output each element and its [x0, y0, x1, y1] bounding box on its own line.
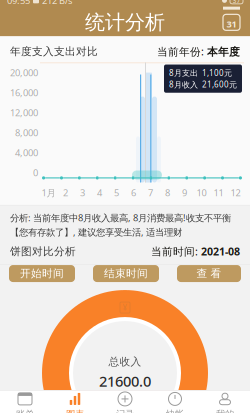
staticText: 6: [131, 186, 136, 199]
staticText: 查 看: [196, 267, 221, 280]
staticText: 1月: [41, 186, 55, 199]
staticText: 212 B/s: [42, 0, 72, 6]
staticText: 3: [80, 186, 85, 199]
staticText: 【您有存款了】, 建议您享受生活, 适当理财: [10, 226, 182, 238]
staticText: 当前年份: 本年度: [157, 44, 240, 58]
staticText: 11: [213, 186, 223, 199]
staticText: 31: [226, 18, 236, 30]
staticText: ¥: [122, 302, 127, 313]
staticText: 结束时间: [104, 267, 148, 280]
staticText: 年度支入支出对比: [10, 45, 98, 58]
staticText: 总收入: [108, 355, 141, 368]
staticText: 5: [114, 186, 119, 199]
staticText: 0: [33, 166, 38, 179]
button[interactable]: 结束时间: [93, 265, 159, 282]
staticText: 16,000: [10, 86, 38, 99]
staticText: 8: [165, 186, 170, 199]
staticText: 7: [148, 186, 153, 199]
staticText: 8月收入 21,600元: [169, 79, 237, 90]
button[interactable]: 查 看: [177, 265, 241, 282]
button[interactable]: 图表: [50, 387, 100, 413]
staticText: 9: [182, 186, 187, 199]
staticText: 2: [63, 186, 68, 199]
staticText: 4,000: [15, 146, 38, 159]
staticText: 21600.0: [99, 371, 151, 391]
staticText: 8,000: [15, 126, 38, 139]
staticText: 09:55: [7, 0, 30, 6]
staticText: 快帐: [166, 408, 184, 413]
button[interactable]: 开始时间: [9, 265, 75, 282]
staticText: 统计分析: [85, 10, 165, 35]
staticText: 10: [196, 186, 206, 199]
button[interactable]: 账单: [0, 387, 50, 413]
staticText: 记录: [116, 408, 134, 413]
staticText: 账单: [16, 408, 34, 413]
staticText: 4: [97, 186, 102, 199]
staticText: 12,000: [10, 106, 38, 119]
staticText: 12: [230, 186, 240, 199]
button[interactable]: 记录: [100, 387, 150, 413]
staticText: 20,000: [10, 66, 38, 79]
staticText: 图表: [66, 408, 84, 413]
staticText: 37: [232, 0, 240, 5]
staticText: 分析: 当前年度中8月收入最高, 8月消费最高!收支不平衡: [10, 211, 231, 224]
staticText: 当前时间: 2021-08: [151, 244, 240, 258]
staticText: 饼图对比分析: [10, 245, 76, 258]
staticText: 我的: [216, 408, 234, 413]
button[interactable]: 快帐: [150, 387, 200, 413]
button[interactable]: 我的: [200, 387, 250, 413]
staticText: 开始时间: [20, 267, 64, 280]
button[interactable]: Calendar: [223, 14, 240, 30]
staticText: 8月支出 1,100元: [169, 67, 232, 78]
